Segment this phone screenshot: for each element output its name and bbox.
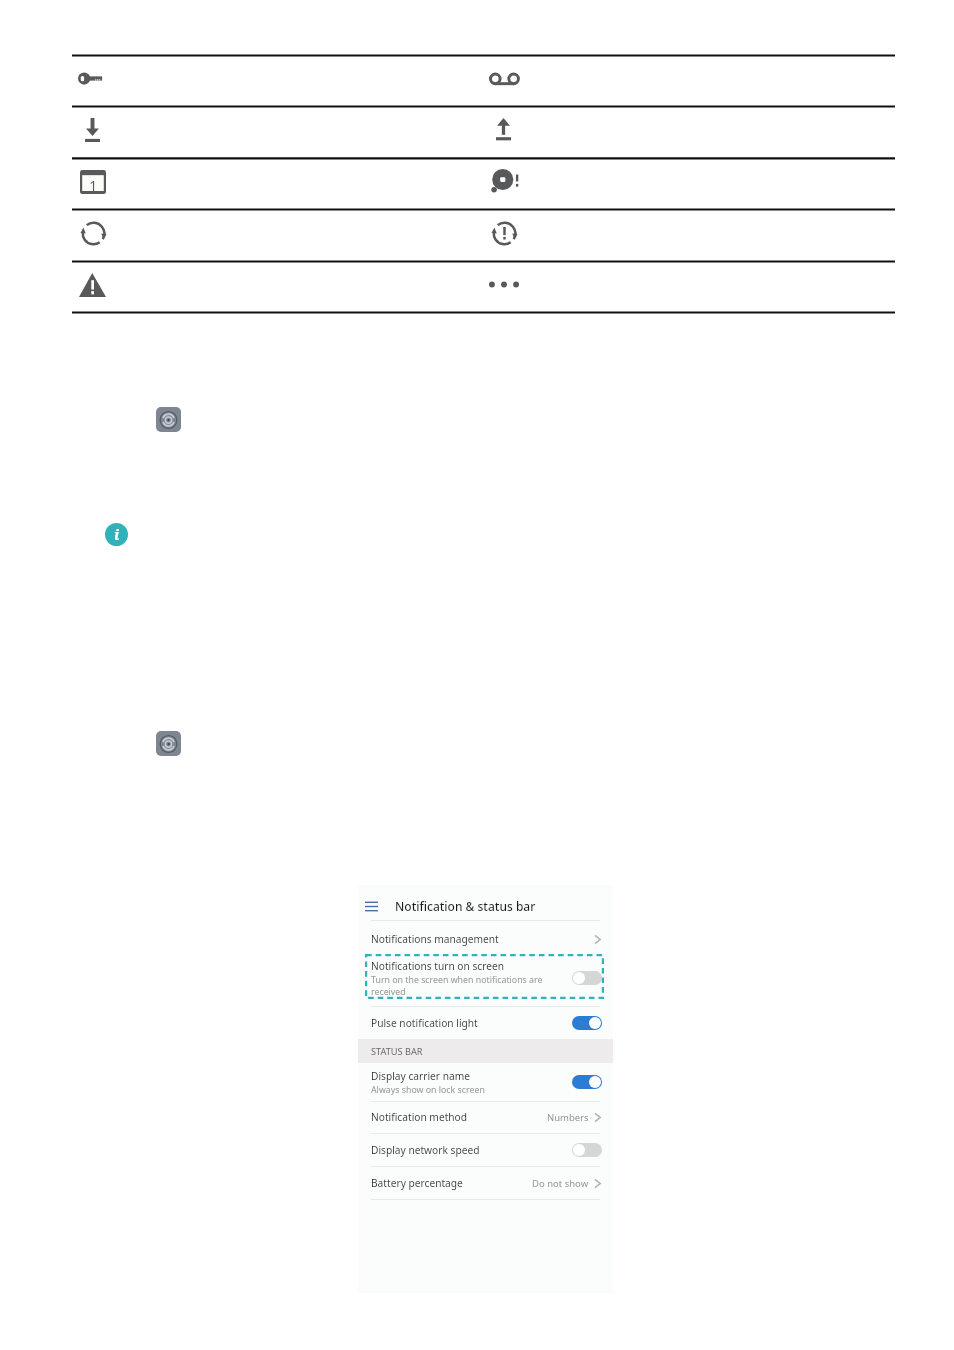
button[interactable]: Display network speed: [358, 1134, 613, 1166]
button[interactable]: Switch, off: [572, 1143, 602, 1157]
button[interactable]: Switch, off: [572, 971, 602, 985]
button[interactable]: Battery percentage: [358, 1167, 613, 1199]
staticText: Always show on lock screen: [371, 1084, 485, 1096]
button[interactable]: Pulse notification light: [358, 1007, 613, 1039]
staticText: Display carrier name: [371, 1069, 470, 1083]
button[interactable]: Open navigation menu: [358, 892, 384, 919]
staticText: Notifications management: [371, 932, 499, 946]
button[interactable]: App icon: [156, 731, 181, 756]
button[interactable]: Switch, on: [572, 1075, 602, 1089]
staticText: Notification & status bar: [395, 898, 536, 914]
staticText: Pulse notification light: [371, 1016, 478, 1030]
staticText: Notifications turn on screen: [371, 959, 505, 973]
button[interactable]: Notification method: [358, 1101, 613, 1133]
staticText: STATUS BAR: [371, 1045, 423, 1058]
button[interactable]: Switch, on: [572, 1016, 602, 1030]
button[interactable]: Info: [105, 523, 128, 546]
staticText: Display network speed: [371, 1143, 480, 1157]
staticText: 1: [89, 175, 98, 195]
staticText: i: [114, 524, 120, 544]
button[interactable]: Display carrier name: [358, 1063, 613, 1101]
button[interactable]: App icon: [156, 407, 181, 432]
staticText: Notification method: [371, 1110, 468, 1124]
button[interactable]: Notifications management: [358, 923, 613, 955]
staticText: Battery percentage: [371, 1176, 463, 1190]
button[interactable]: Notifications turn on screen: [358, 955, 613, 1000]
staticText: Turn on the screen when notifications ar…: [371, 974, 548, 998]
staticText: Numbers: [547, 1111, 589, 1124]
staticText: Do not show: [532, 1177, 589, 1190]
